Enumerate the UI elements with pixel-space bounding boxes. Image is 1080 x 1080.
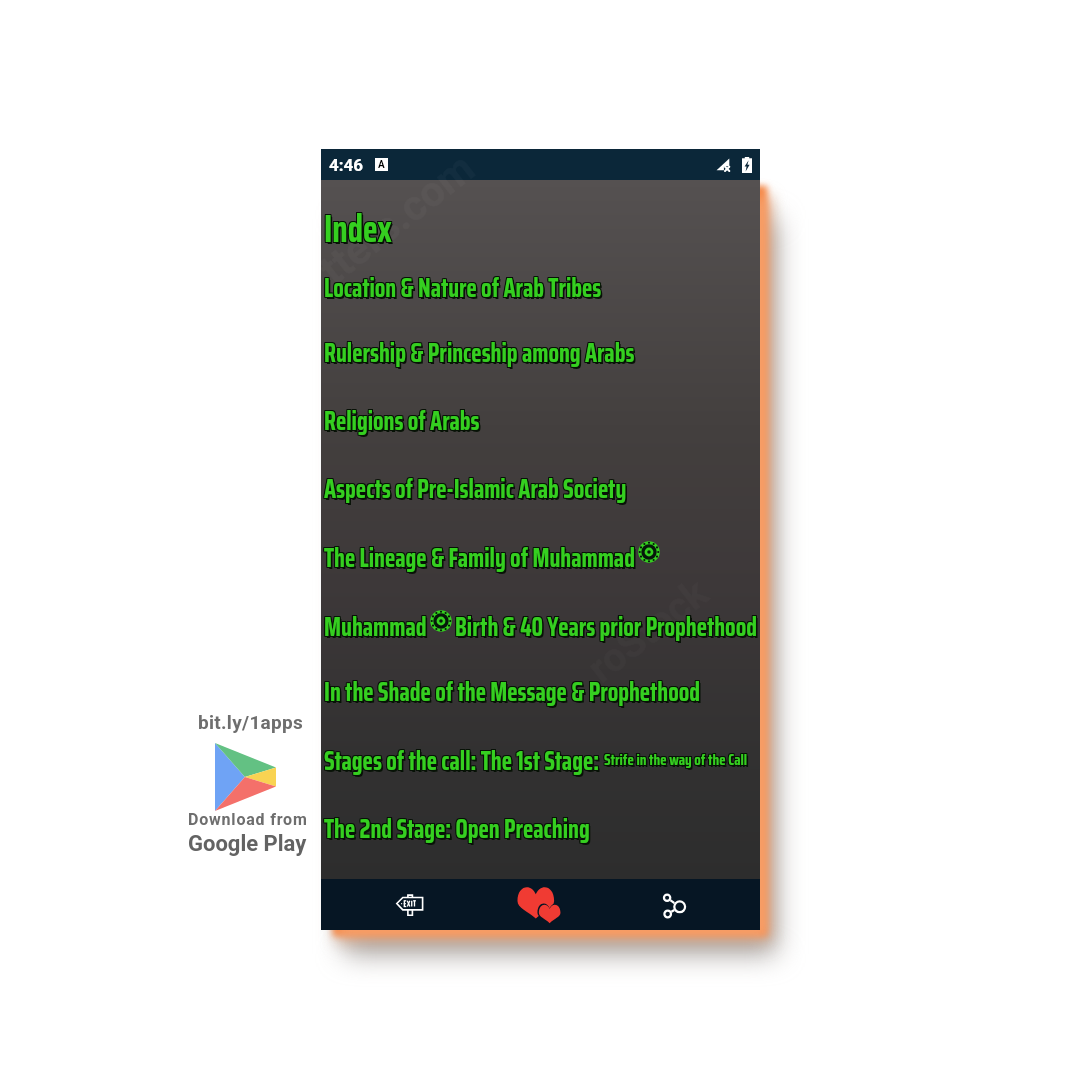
staticText: Google Play — [188, 831, 307, 857]
button[interactable]: Favourites — [503, 879, 577, 930]
button[interactable]: Location & Nature of Arab Tribes — [324, 267, 763, 307]
staticText: In the Shade of the Message & Prophethoo… — [323, 672, 700, 713]
staticText: Aspects of Pre-Islamic Arab Society — [325, 467, 628, 508]
staticText: In the Shade of the Message & Prophethoo… — [325, 670, 702, 711]
staticText: roStock — [578, 569, 718, 692]
staticText: Birth & 40 Years prior Prophethood — [454, 607, 756, 648]
staticText: Muhammad — [324, 607, 427, 648]
staticText: Aspects of Pre-Islamic Arab Society — [325, 469, 628, 510]
staticText: Strife in the way of the Call — [604, 746, 747, 771]
button[interactable]: Muhammad — [324, 606, 763, 646]
staticText: Birth & 40 Years prior Prophethood — [457, 608, 759, 649]
staticText: The 2nd Stage: Open Preaching — [324, 809, 590, 850]
staticText: Birth & 40 Years prior Prophethood — [456, 605, 758, 646]
staticText: Index — [323, 198, 391, 258]
staticText: Stages of the call: The 1st Stage: — [325, 740, 600, 781]
staticText: The 2nd Stage: Open Preaching — [325, 809, 591, 850]
staticText: Location & Nature of Arab Tribes — [323, 268, 601, 309]
staticText: Muhammad — [323, 605, 426, 646]
staticText: Birth & 40 Years prior Prophethood — [455, 606, 757, 647]
button[interactable]: The Lineage & Family of Muhammad — [324, 537, 763, 577]
staticText: Strife in the way of the Call — [605, 747, 748, 772]
staticText: Strife in the way of the Call — [603, 748, 746, 773]
staticText: Stages of the call: The 1st Stage: — [325, 741, 600, 782]
staticText: The 2nd Stage: Open Preaching — [325, 808, 591, 849]
staticText: Index — [324, 200, 392, 260]
staticText: In the Shade of the Message & Prophethoo… — [325, 672, 702, 713]
staticText: Religions of Arabs — [324, 400, 480, 441]
staticText: The Lineage & Family of Muhammad — [325, 537, 636, 578]
staticText: Strife in the way of the Call — [603, 746, 746, 771]
staticText: The 2nd Stage: Open Preaching — [324, 807, 590, 848]
staticText: Muhammad — [324, 605, 427, 646]
staticText: Stages of the call: The 1st Stage: — [324, 739, 599, 780]
staticText: Index — [325, 200, 393, 260]
staticText: Index — [324, 198, 392, 258]
staticText: Download from — [188, 810, 308, 829]
staticText: Religions of Arabs — [324, 399, 480, 440]
staticText: Birth & 40 Years prior Prophethood — [454, 606, 756, 647]
staticText: Aspects of Pre-Islamic Arab Society — [324, 469, 627, 510]
staticText: Strife in the way of the Call — [605, 748, 748, 773]
staticText: Muhammad — [323, 607, 426, 648]
staticText: Stages of the call: The 1st Stage: — [324, 740, 599, 781]
button[interactable]: The 2nd Stage: Open Preaching — [324, 808, 763, 848]
staticText: Strife in the way of the Call — [604, 747, 747, 772]
staticText: Religions of Arabs — [325, 401, 481, 442]
staticText: Rulership & Princeship among Arabs — [323, 332, 634, 373]
staticText: Muhammad — [323, 606, 426, 647]
staticText: Index — [326, 201, 394, 261]
staticText: Location & Nature of Arab Tribes — [323, 266, 601, 307]
staticText: Stages of the call: The 1st Stage: — [323, 739, 598, 780]
staticText: Strife in the way of the Call — [603, 747, 746, 772]
staticText: Index — [325, 198, 393, 258]
staticText: Religions of Arabs — [324, 401, 480, 442]
button[interactable]: In the Shade of the Message & Prophethoo… — [324, 671, 763, 711]
staticText: Aspects of Pre-Islamic Arab Society — [323, 467, 626, 508]
staticText: Stages of the call: The 1st Stage: — [326, 742, 601, 783]
button[interactable]: Exit — [351, 879, 469, 930]
staticText: Index — [324, 199, 392, 259]
button[interactable]: Aspects of Pre-Islamic Arab Society — [324, 468, 763, 508]
staticText: Location & Nature of Arab Tribes — [325, 268, 603, 309]
staticText: Birth & 40 Years prior Prophethood — [456, 606, 758, 647]
staticText: Rulership & Princeship among Arabs — [323, 331, 634, 372]
staticText: The Lineage & Family of Muhammad — [323, 538, 634, 579]
staticText: Rulership & Princeship among Arabs — [325, 332, 636, 373]
staticText: Stages of the call: The 1st Stage: — [324, 741, 599, 782]
staticText: The 2nd Stage: Open Preaching — [326, 810, 592, 851]
staticText: In the Shade of the Message & Prophethoo… — [323, 671, 700, 712]
staticText: In the Shade of the Message & Prophethoo… — [323, 670, 700, 711]
staticText: Location & Nature of Arab Tribes — [324, 268, 602, 309]
staticText: Muhammad — [325, 607, 428, 648]
staticText: The Lineage & Family of Muhammad — [323, 537, 634, 578]
staticText: Index — [325, 199, 393, 259]
staticText: The Lineage & Family of Muhammad — [325, 536, 636, 577]
staticText: Religions of Arabs — [325, 400, 481, 441]
staticText: Muhammad — [325, 606, 428, 647]
staticText: Rulership & Princeship among Arabs — [324, 331, 635, 372]
staticText: Strife in the way of the Call — [604, 748, 747, 773]
staticText: The Lineage & Family of Muhammad — [324, 536, 635, 577]
staticText: Strife in the way of the Call — [606, 749, 749, 774]
staticText: Strife in the way of the Call — [605, 746, 748, 771]
button[interactable]: Religions of Arabs — [324, 400, 763, 440]
staticText: Rulership & Princeship among Arabs — [323, 333, 634, 374]
staticText: In the Shade of the Message & Prophethoo… — [324, 670, 701, 711]
button[interactable]: Share — [615, 879, 733, 930]
staticText: Aspects of Pre-Islamic Arab Society — [324, 467, 627, 508]
button[interactable]: Rulership & Princeship among Arabs — [324, 332, 763, 372]
staticText: The Lineage & Family of Muhammad — [325, 538, 636, 579]
button[interactable]: Stages of the call: The 1st Stage: — [324, 740, 763, 780]
staticText: Location & Nature of Arab Tribes — [325, 267, 603, 308]
staticText: Birth & 40 Years prior Prophethood — [455, 607, 757, 648]
staticText: Location & Nature of Arab Tribes — [324, 266, 602, 307]
staticText: Location & Nature of Arab Tribes — [326, 269, 604, 310]
staticText: Aspects of Pre-Islamic Arab Society — [325, 468, 628, 509]
staticText: Rulership & Princeship among Arabs — [326, 334, 636, 375]
staticText: Location & Nature of Arab Tribes — [324, 267, 602, 308]
staticText: Muhammad — [324, 606, 427, 647]
staticText: Aspects of Pre-Islamic Arab Society — [326, 470, 629, 511]
staticText: Rulership & Princeship among Arabs — [324, 333, 635, 374]
staticText: The Lineage & Family of Muhammad — [323, 536, 634, 577]
